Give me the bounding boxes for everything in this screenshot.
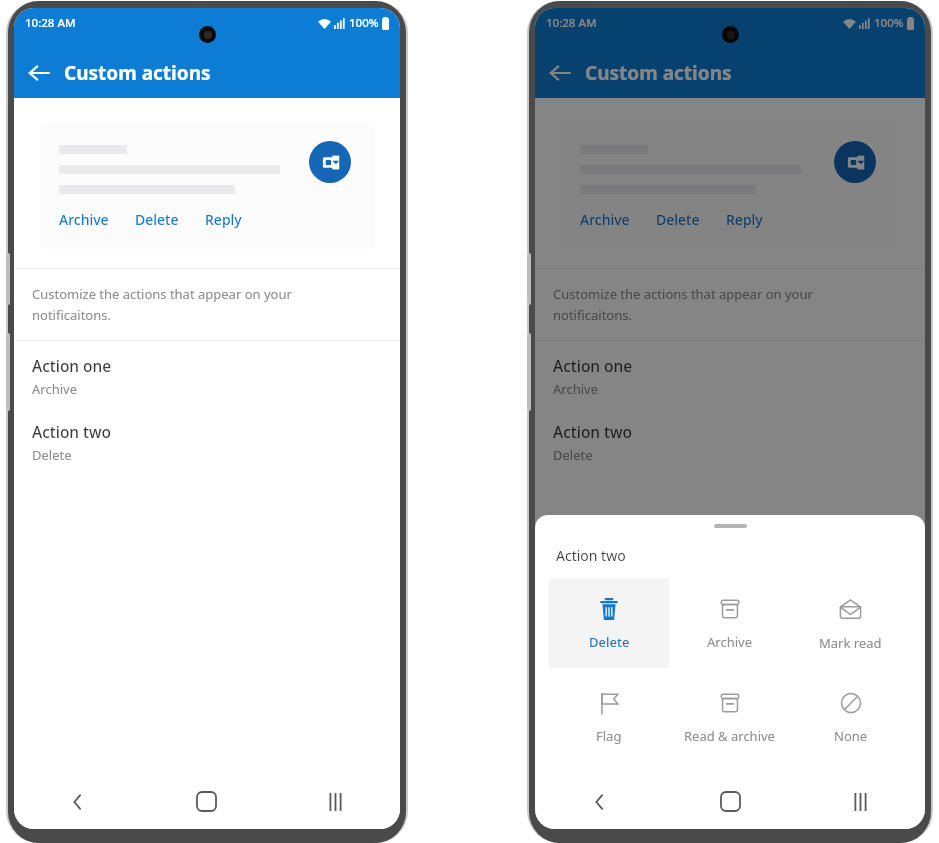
staticText: Customize the actions that appear on you…: [553, 285, 813, 303]
staticText: Reply: [726, 210, 763, 229]
button[interactable]: Back: [14, 48, 64, 98]
button[interactable]: Action two: [535, 407, 925, 473]
button[interactable]: Recents: [795, 774, 925, 829]
button[interactable]: Action one: [14, 341, 400, 407]
button[interactable]: Back: [535, 774, 665, 829]
staticText: notificaitons.: [553, 306, 632, 324]
button[interactable]: Flag: [549, 672, 669, 762]
button[interactable]: Archive: [580, 210, 630, 229]
staticText: Archive: [580, 210, 630, 229]
button[interactable]: Action one: [535, 341, 925, 407]
staticText: Archive: [553, 380, 598, 398]
staticText: Archive: [59, 210, 109, 229]
staticText: Delete: [32, 446, 72, 464]
button[interactable]: Mark read: [790, 578, 911, 668]
button[interactable]: Home: [665, 774, 795, 829]
button[interactable]: Read & archive: [669, 672, 790, 762]
button[interactable]: Back: [535, 48, 585, 98]
button[interactable]: Delete: [135, 210, 179, 229]
staticText: Action two: [556, 546, 626, 565]
staticText: Delete: [656, 210, 700, 229]
staticText: Delete: [553, 446, 593, 464]
button[interactable]: Back: [14, 774, 142, 829]
staticText: Customize the actions that appear on you…: [32, 285, 292, 303]
staticText: 100%: [349, 15, 379, 31]
staticText: Read & archive: [684, 727, 775, 745]
button[interactable]: Delete: [549, 578, 669, 668]
staticText: Custom actions: [64, 60, 211, 86]
button[interactable]: Reply: [726, 210, 763, 229]
button[interactable]: Action two: [14, 407, 400, 473]
button[interactable]: Delete: [656, 210, 700, 229]
staticText: Mark read: [819, 634, 882, 652]
staticText: Delete: [135, 210, 179, 229]
staticText: Archive: [32, 380, 77, 398]
staticText: Action one: [553, 355, 633, 376]
button[interactable]: Archive: [59, 210, 109, 229]
staticText: Delete: [589, 633, 630, 651]
button[interactable]: None: [790, 672, 911, 762]
staticText: Action two: [553, 421, 633, 442]
staticText: 100%: [874, 15, 904, 31]
staticText: Action two: [32, 421, 112, 442]
staticText: 10:28 AM: [546, 15, 597, 31]
button[interactable]: Recents: [271, 774, 400, 829]
button[interactable]: Back: [535, 774, 665, 829]
staticText: None: [834, 727, 868, 745]
staticText: Action one: [32, 355, 112, 376]
staticText: 10:28 AM: [25, 15, 76, 31]
staticText: Custom actions: [585, 60, 732, 86]
button[interactable]: Home: [665, 774, 795, 829]
staticText: Flag: [596, 727, 622, 745]
staticText: Archive: [707, 633, 752, 651]
staticText: Reply: [205, 210, 242, 229]
button[interactable]: Archive: [669, 578, 790, 668]
button[interactable]: Reply: [205, 210, 242, 229]
button[interactable]: Recents: [795, 774, 925, 829]
button[interactable]: Home: [142, 774, 271, 829]
staticText: notificaitons.: [32, 306, 111, 324]
